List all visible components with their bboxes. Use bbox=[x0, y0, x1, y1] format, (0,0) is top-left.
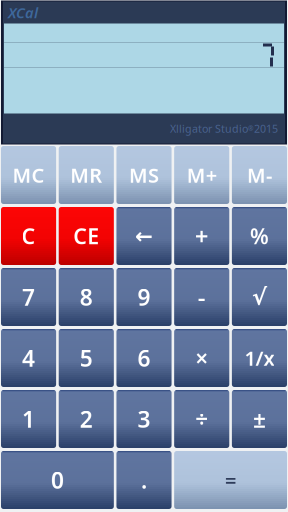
staticText: √ bbox=[252, 284, 267, 310]
staticText: + bbox=[195, 220, 209, 252]
staticText: × bbox=[195, 343, 208, 373]
button[interactable]: . bbox=[116, 451, 171, 509]
button[interactable]: 0 bbox=[1, 451, 114, 509]
staticText: 1 bbox=[22, 404, 35, 434]
button[interactable]: 1 bbox=[1, 390, 56, 448]
staticText: 8 bbox=[80, 282, 93, 312]
staticText: 3 bbox=[137, 404, 150, 434]
button[interactable]: CE bbox=[59, 207, 114, 265]
staticText: 7 bbox=[22, 282, 35, 312]
staticText: 1/x bbox=[244, 345, 274, 371]
staticText: - bbox=[198, 281, 206, 313]
button[interactable]: 7 bbox=[1, 268, 56, 326]
button[interactable]: 8 bbox=[59, 268, 114, 326]
staticText: MS bbox=[129, 162, 159, 188]
staticText: 5 bbox=[80, 343, 93, 373]
button[interactable]: 4 bbox=[1, 329, 56, 387]
button[interactable]: + bbox=[174, 207, 229, 265]
button[interactable]: 6 bbox=[116, 329, 171, 387]
staticText: M- bbox=[247, 162, 272, 188]
button[interactable]: MR bbox=[59, 146, 114, 204]
button[interactable]: - bbox=[174, 268, 229, 326]
button[interactable]: √ bbox=[232, 268, 287, 326]
staticText: CE bbox=[73, 222, 99, 250]
button[interactable]: 1/x bbox=[232, 329, 287, 387]
button[interactable]: ÷ bbox=[174, 390, 229, 448]
staticText: MC bbox=[13, 162, 45, 188]
button[interactable]: × bbox=[174, 329, 229, 387]
button[interactable]: % bbox=[232, 207, 287, 265]
button[interactable]: MC bbox=[1, 146, 56, 204]
staticText: Xlligator Studio bbox=[170, 121, 248, 136]
button[interactable]: 5 bbox=[59, 329, 114, 387]
staticText: M+ bbox=[187, 162, 217, 188]
staticText: 2 bbox=[80, 404, 93, 434]
button[interactable]: 9 bbox=[116, 268, 171, 326]
button[interactable]: C bbox=[1, 207, 56, 265]
staticText: 2015 bbox=[254, 121, 278, 136]
staticText: ± bbox=[253, 404, 266, 434]
staticText: 6 bbox=[137, 343, 150, 373]
staticText: ÷ bbox=[195, 404, 208, 434]
button[interactable]: 3 bbox=[116, 390, 171, 448]
button[interactable]: = bbox=[174, 451, 287, 509]
staticText: 4 bbox=[22, 343, 35, 373]
button[interactable]: 2 bbox=[59, 390, 114, 448]
staticText: MR bbox=[70, 162, 102, 188]
staticText: 0 bbox=[51, 465, 64, 495]
button[interactable]: M- bbox=[232, 146, 287, 204]
staticText: ← bbox=[135, 224, 153, 248]
staticText: ® bbox=[248, 124, 254, 133]
staticText: = bbox=[225, 467, 236, 493]
staticText: % bbox=[250, 222, 269, 250]
button[interactable]: M+ bbox=[174, 146, 229, 204]
staticText: . bbox=[141, 465, 147, 495]
staticText: 9 bbox=[137, 282, 150, 312]
button[interactable]: ← bbox=[116, 207, 171, 265]
button[interactable]: ± bbox=[232, 390, 287, 448]
staticText: XCal bbox=[8, 3, 38, 22]
staticText: C bbox=[22, 222, 36, 250]
button[interactable]: MS bbox=[116, 146, 171, 204]
